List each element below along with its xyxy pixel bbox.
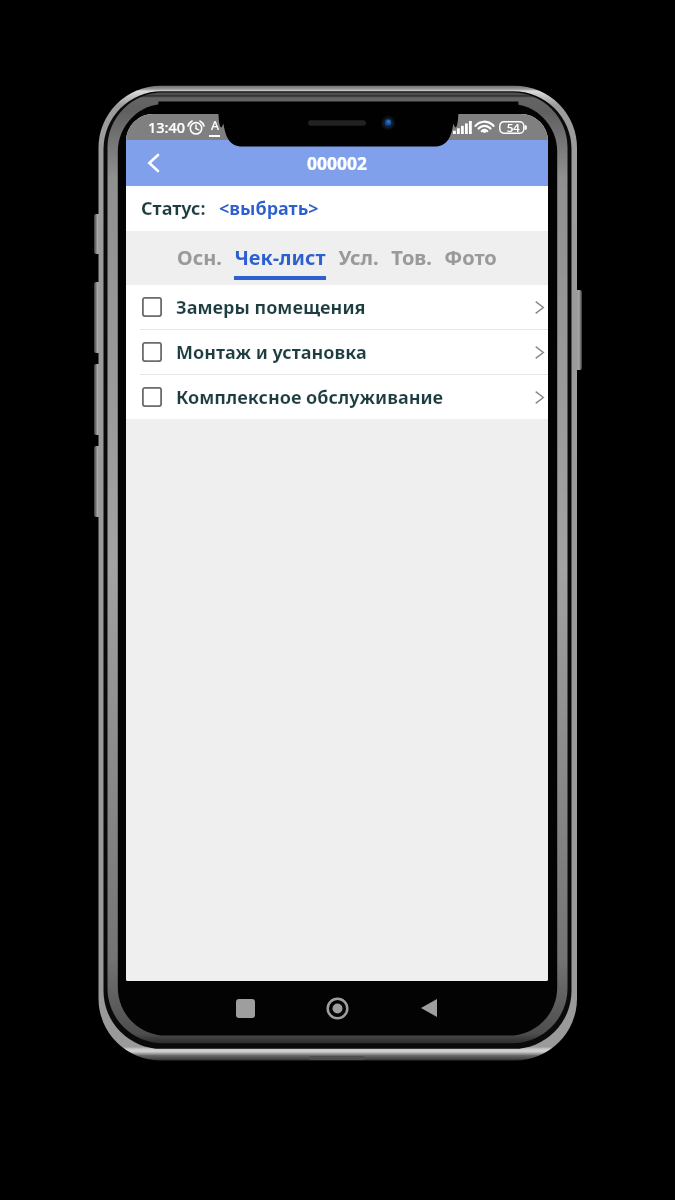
button[interactable]: Recent apps (225, 988, 265, 1028)
button[interactable]: Тов. (385, 244, 438, 280)
staticText: <выбрать> (219, 196, 319, 221)
staticText: A (211, 117, 219, 134)
button[interactable]: Замеры помещения (126, 285, 548, 329)
button[interactable]: Фото (438, 244, 503, 280)
staticText: Статус: (141, 196, 206, 221)
staticText: 54 (507, 120, 520, 135)
staticText: Фото (444, 244, 497, 271)
staticText: Тов. (391, 244, 432, 271)
button[interactable]: Back (131, 141, 175, 185)
button[interactable]: <выбрать> (219, 196, 319, 221)
staticText: Чек-лист (234, 244, 326, 271)
staticText: Осн. (177, 244, 222, 271)
staticText: 000002 (307, 151, 368, 175)
staticText: Замеры помещения (176, 295, 366, 320)
staticText: Монтаж и установка (176, 340, 367, 365)
staticText: Комплексное обслуживание (176, 385, 444, 410)
button[interactable]: Back (409, 988, 449, 1028)
button[interactable]: Монтаж и установка (126, 330, 548, 374)
button[interactable]: Home (317, 988, 357, 1028)
button[interactable]: Чек-лист (228, 244, 332, 280)
staticText: 13:40 (148, 117, 186, 137)
button[interactable]: Комплексное обслуживание (126, 375, 548, 419)
button[interactable]: Осн. (171, 244, 228, 280)
staticText: Усл. (338, 244, 379, 271)
button[interactable]: Усл. (332, 244, 385, 280)
